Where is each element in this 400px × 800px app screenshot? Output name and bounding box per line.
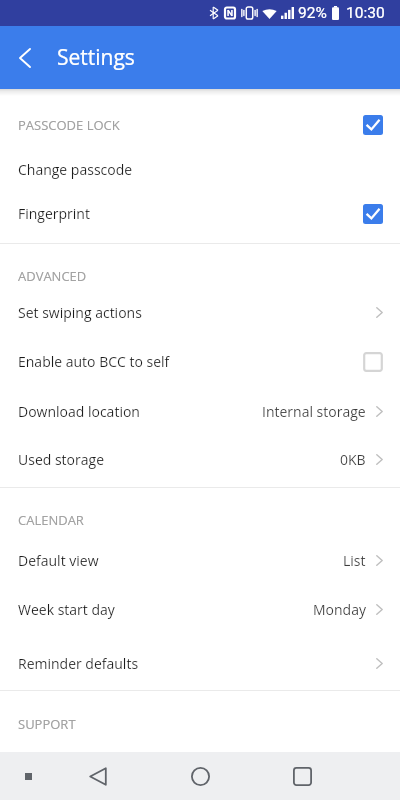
staticText: Set swiping actions [18,303,142,322]
staticText: Settings [57,43,135,72]
button[interactable]: Enable auto BCC to self [0,336,400,387]
staticText: Fingerprint [18,204,90,223]
staticText: Used storage [18,450,104,469]
staticText: Download location [18,402,140,421]
button[interactable]: Week start day [0,589,400,629]
button[interactable]: Change passcode [0,147,400,191]
staticText: CALENDAR [18,511,383,529]
staticText: Default view [18,551,99,570]
staticText: Week start day [18,600,115,619]
staticText: Reminder defaults [18,654,139,673]
staticText: List [343,551,366,570]
button[interactable]: Menu [0,752,47,800]
staticText: Enable auto BCC to self [18,352,170,371]
button[interactable]: PASSCODE LOCK [0,103,400,147]
staticText: Change passcode [18,160,133,179]
staticText: Monday [313,600,366,619]
staticText: 92% [298,4,327,22]
button[interactable]: Back [47,752,149,800]
staticText: ADVANCED [18,267,383,285]
button[interactable]: Fingerprint [0,191,400,236]
staticText: 0KB [340,450,366,469]
button[interactable]: Used storage [0,436,400,483]
button[interactable]: Reminder defaults [0,636,400,690]
button[interactable]: Set swiping actions [0,288,400,336]
button[interactable]: Recent apps [251,752,354,800]
staticText: SUPPORT [18,715,383,733]
button[interactable]: Home [149,752,251,800]
staticText: Internal storage [262,402,366,421]
staticText: 10:30 [346,4,385,22]
button[interactable]: Download location [0,387,400,436]
button[interactable]: Default view [0,532,400,589]
button[interactable]: Navigate up [0,26,50,89]
staticText: PASSCODE LOCK [18,116,363,134]
